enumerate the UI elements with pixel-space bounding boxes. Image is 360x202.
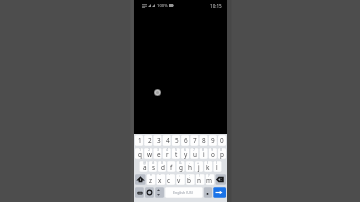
staticText: ; — [189, 173, 190, 178]
button[interactable]: 4 — [163, 147, 172, 160]
button[interactable]: ! — [194, 173, 204, 186]
staticText: t — [175, 150, 178, 159]
staticText: - — [189, 160, 191, 165]
button[interactable]: 7 — [190, 134, 199, 147]
staticText: " — [159, 173, 161, 178]
staticText: s — [152, 163, 156, 172]
staticText: 2 — [148, 136, 152, 145]
button[interactable]: 8 — [199, 147, 208, 160]
staticText: ( — [207, 160, 209, 165]
staticText: l — [216, 163, 218, 172]
staticText: 1 — [138, 136, 142, 145]
staticText: 6 — [184, 136, 188, 145]
button[interactable]: 6 — [181, 147, 190, 160]
button[interactable]: 1 — [135, 134, 145, 147]
staticText: 8 — [202, 136, 206, 145]
button[interactable]: " — [155, 173, 164, 186]
button[interactable]: 5 — [172, 134, 181, 147]
button[interactable]: 6 — [181, 134, 190, 147]
staticText: 8 — [202, 147, 205, 152]
staticText: y — [184, 150, 188, 159]
staticText: a — [143, 163, 147, 172]
staticText: e — [157, 150, 161, 159]
staticText: b — [187, 176, 191, 185]
button[interactable]: ; — [184, 173, 194, 186]
button[interactable]: + — [194, 160, 203, 173]
staticText: $ — [161, 160, 164, 165]
staticText: h — [188, 163, 192, 172]
button[interactable]: Switch keyboard — [145, 186, 154, 199]
button[interactable]: Space — [163, 186, 203, 199]
button[interactable]: 9 — [208, 147, 217, 160]
staticText: ? — [208, 173, 210, 178]
button[interactable]: 3 — [154, 134, 163, 147]
staticText: + — [197, 160, 200, 165]
button[interactable]: 8 — [199, 134, 208, 147]
button[interactable]: 2 — [145, 147, 154, 160]
staticText: g — [179, 163, 183, 172]
staticText: 3 — [157, 136, 161, 145]
button[interactable]: 3 — [154, 147, 163, 160]
staticText: 7 — [193, 147, 196, 152]
staticText: @ — [143, 160, 147, 165]
staticText: v — [177, 176, 181, 185]
staticText: u — [193, 150, 197, 159]
staticText: j — [198, 163, 200, 172]
button[interactable]: Enter — [212, 186, 226, 199]
button[interactable]: # — [149, 160, 158, 173]
button[interactable]: 0 — [217, 134, 226, 147]
button[interactable]: - — [185, 160, 194, 173]
button[interactable]: 4 — [163, 134, 172, 147]
staticText: 100% — [157, 3, 168, 9]
staticText: 0 — [220, 147, 223, 152]
staticText: & — [179, 160, 182, 165]
staticText: o — [211, 150, 215, 159]
staticText: w — [147, 150, 153, 159]
button[interactable]: ) — [212, 160, 221, 173]
button[interactable]: _ — [167, 160, 176, 173]
button[interactable]: Shift — [135, 173, 146, 186]
staticText: i — [203, 150, 205, 159]
staticText: ' — [169, 173, 170, 178]
button[interactable]: $ — [158, 160, 167, 173]
staticText: 2 — [148, 147, 151, 152]
staticText: 9 — [211, 136, 215, 145]
staticText: c — [167, 176, 171, 185]
staticText: 7 — [193, 136, 197, 145]
staticText: * — [150, 173, 152, 178]
button[interactable]: Backspace — [214, 173, 226, 186]
button[interactable]: 5 — [172, 147, 181, 160]
button[interactable]: ( — [203, 160, 212, 173]
staticText: ! — [199, 173, 200, 178]
staticText: 5 — [175, 136, 179, 145]
button[interactable]: * — [146, 173, 155, 186]
staticText: 6 — [184, 147, 187, 152]
staticText: m — [206, 176, 212, 185]
staticText: d — [161, 163, 165, 172]
button[interactable]: ' — [164, 173, 174, 186]
button[interactable]: 7 — [190, 147, 199, 160]
staticText: _ — [171, 160, 173, 165]
button[interactable]: 1 — [135, 147, 145, 160]
staticText: English (US) — [173, 190, 193, 195]
staticText: f — [170, 163, 173, 172]
button[interactable]: : — [174, 173, 184, 186]
staticText: k — [206, 163, 210, 172]
button[interactable]: Move cursor — [154, 186, 163, 199]
button[interactable]: Symbols — [135, 186, 145, 199]
staticText: 9 — [211, 147, 214, 152]
staticText: 10:15 — [210, 3, 222, 9]
button[interactable]: & — [176, 160, 185, 173]
button[interactable]: ? — [204, 173, 214, 186]
staticText: # — [152, 160, 155, 165]
button[interactable]: 0 — [217, 147, 226, 160]
button[interactable]: Period — [203, 186, 212, 199]
staticText: z — [149, 176, 153, 185]
button[interactable]: @ — [140, 160, 149, 173]
button[interactable]: 2 — [145, 134, 154, 147]
staticText: q — [138, 150, 142, 159]
staticText: 1 — [139, 147, 142, 152]
staticText: 0 — [220, 136, 224, 145]
staticText: 4 — [166, 136, 170, 145]
button[interactable]: 9 — [208, 134, 217, 147]
